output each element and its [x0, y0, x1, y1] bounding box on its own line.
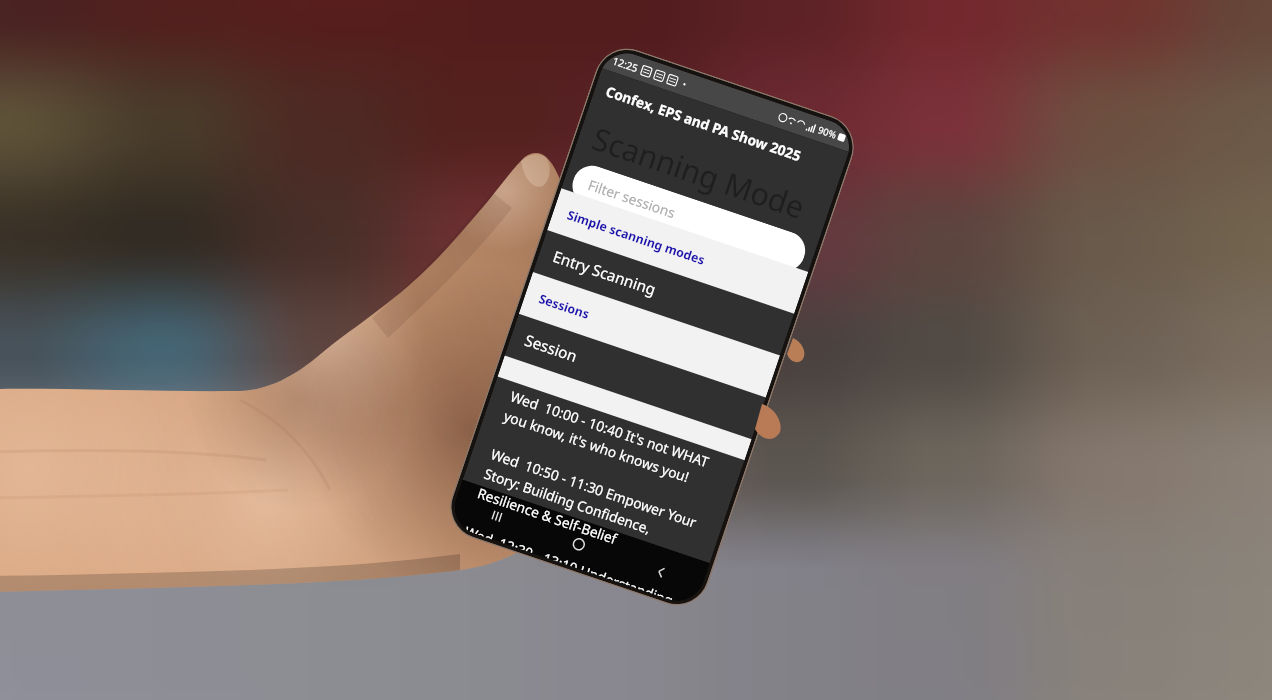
staticText: Simple scanning modes	[565, 206, 707, 268]
button[interactable]: Back	[612, 535, 710, 608]
staticText: Sessions	[537, 290, 592, 323]
button[interactable]: Home	[530, 508, 627, 580]
staticText: Wed 10:00 - 10:40 It's not WHAT you know…	[501, 387, 725, 496]
staticText: Filter sessions	[585, 175, 678, 223]
button[interactable]: Simple scanning modes	[547, 188, 808, 314]
button[interactable]: Session	[505, 314, 766, 439]
staticText: Wed 10:50 - 11:30 Empower Your Story: Bu…	[475, 445, 706, 573]
button[interactable]: Filter sessions	[567, 160, 810, 276]
staticText: Scanning Mode	[587, 117, 811, 228]
staticText: 12:25	[611, 53, 640, 75]
button[interactable]: Entry Scanning	[533, 230, 794, 356]
staticText: Confex, EPS and PA Show 2025	[603, 82, 804, 166]
staticText: Session	[522, 330, 580, 367]
staticText: 90%	[816, 123, 838, 141]
staticText: Wed 12:30 - 13:10 Understanding	[465, 522, 680, 602]
staticText: Entry Scanning	[550, 246, 659, 300]
button[interactable]: Recent apps	[447, 480, 545, 552]
button[interactable]: Sessions	[519, 272, 780, 397]
